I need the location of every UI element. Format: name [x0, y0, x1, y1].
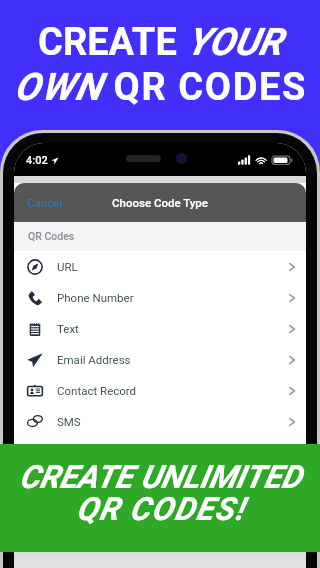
button[interactable]: Cancel: [14, 187, 76, 218]
staticText: 4:02: [26, 154, 48, 167]
button[interactable]: Email Address: [14, 344, 306, 375]
staticText: Contact Record: [57, 384, 137, 397]
staticText: OWN QR CODES: [14, 65, 307, 110]
staticText: URL: [57, 260, 78, 273]
button[interactable]: Contact Record: [14, 375, 306, 406]
staticText: SMS: [57, 415, 81, 428]
button[interactable]: Wi-Fi: [14, 437, 306, 468]
button[interactable]: Phone Number: [14, 282, 306, 313]
button[interactable]: Text: [14, 313, 306, 344]
button[interactable]: URL: [14, 251, 306, 282]
staticText: CREATE YOUR: [38, 20, 282, 65]
staticText: QR Codes: [28, 230, 75, 242]
staticText: Email Address: [57, 353, 131, 366]
staticText: CREATE UNLIMITED: [19, 458, 302, 496]
staticText: Cancel: [27, 196, 63, 209]
staticText: Text: [57, 322, 79, 335]
button[interactable]: SMS: [14, 406, 306, 437]
staticText: Phone Number: [57, 291, 134, 304]
staticText: QR CODES!: [76, 490, 245, 528]
staticText: Choose Code Type: [112, 196, 208, 209]
